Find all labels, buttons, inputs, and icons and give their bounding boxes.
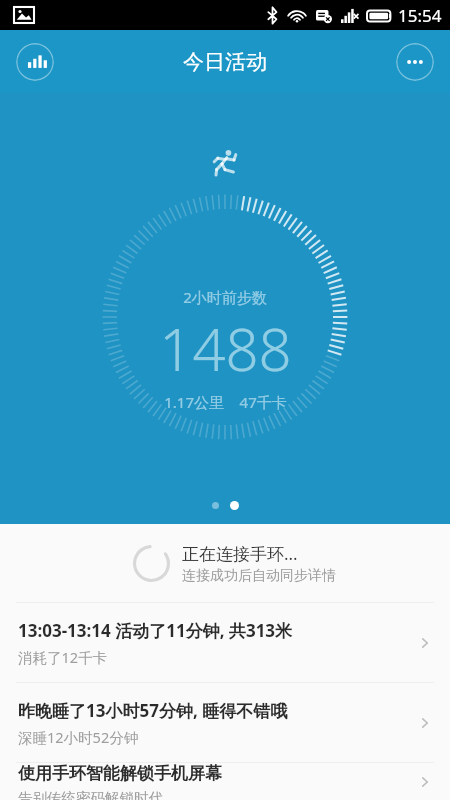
button[interactable] xyxy=(212,502,219,509)
staticText: 告别传统密码解锁时代 xyxy=(18,789,163,800)
staticText: 正在连接手环... xyxy=(182,542,298,565)
button[interactable]: Statistics xyxy=(16,43,54,81)
button[interactable]: More options xyxy=(396,43,434,81)
staticText: 深睡12小时52分钟 xyxy=(18,727,139,747)
other: Open details xyxy=(414,632,436,654)
other: Open details xyxy=(414,712,436,734)
staticText: 昨晚睡了13小时57分钟, 睡得不错哦 xyxy=(18,699,288,722)
staticText: 15:54 xyxy=(398,4,442,27)
button[interactable]: 正在连接手环... xyxy=(0,524,450,602)
staticText: 连接成功后自动同步详情 xyxy=(182,567,336,585)
button[interactable] xyxy=(230,501,239,510)
staticText: 今日活动 xyxy=(183,49,267,75)
staticText: 13:03-13:14 活动了11分钟, 共313米 xyxy=(18,619,293,642)
staticText: 消耗了12千卡 xyxy=(18,647,108,667)
staticText: 2小时前步数 xyxy=(183,287,267,307)
staticText: 1488 xyxy=(159,309,292,388)
button[interactable]: 昨晚睡了13小时57分钟, 睡得不错哦 xyxy=(0,683,450,762)
button[interactable]: 使用手环智能解锁手机屏幕 xyxy=(0,763,450,800)
staticText: 使用手环智能解锁手机屏幕 xyxy=(18,763,222,784)
button[interactable]: 13:03-13:14 活动了11分钟, 共313米 xyxy=(0,603,450,682)
other: Open details xyxy=(414,771,436,793)
staticText: 1.17公里 47千卡 xyxy=(164,392,287,412)
